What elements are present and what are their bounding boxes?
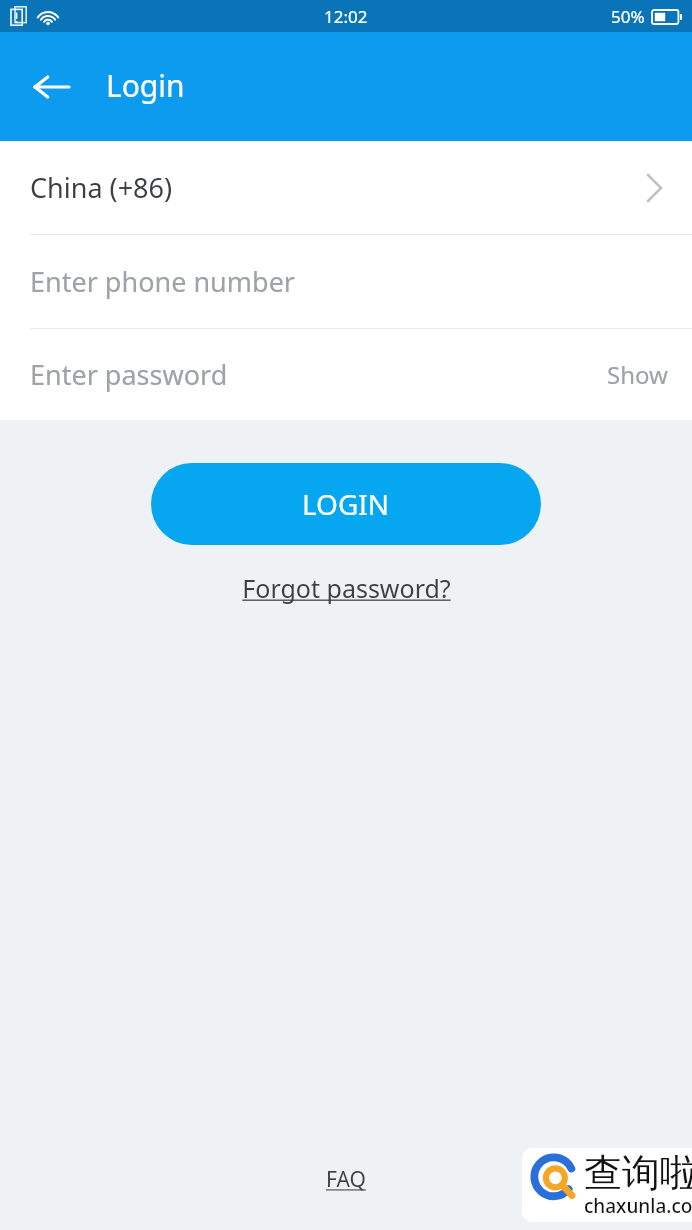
staticText: Show xyxy=(607,358,668,391)
staticText: 12:02 xyxy=(324,5,368,28)
button[interactable]: LOGIN xyxy=(151,463,541,545)
button[interactable]: Enter phone number xyxy=(0,235,692,328)
button[interactable]: Enter password xyxy=(0,329,692,420)
button[interactable]: Forgot password? xyxy=(232,566,461,610)
staticText: Forgot password? xyxy=(242,571,451,605)
staticText: chaxunla.com xyxy=(584,1193,692,1219)
button[interactable]: Show xyxy=(599,350,676,399)
staticText: Login xyxy=(106,65,185,106)
staticText: Enter phone number xyxy=(30,263,296,300)
staticText: China (+86) xyxy=(30,169,173,206)
button[interactable]: FAQ xyxy=(316,1161,376,1198)
staticText: 50% xyxy=(611,5,645,28)
staticText: LOGIN xyxy=(302,485,390,523)
staticText: 查询啦 xyxy=(584,1149,692,1197)
button[interactable]: Back xyxy=(22,57,82,117)
staticText: FAQ xyxy=(326,1165,366,1194)
staticText: Enter password xyxy=(30,356,228,393)
button[interactable]: China (+86) xyxy=(0,141,692,234)
